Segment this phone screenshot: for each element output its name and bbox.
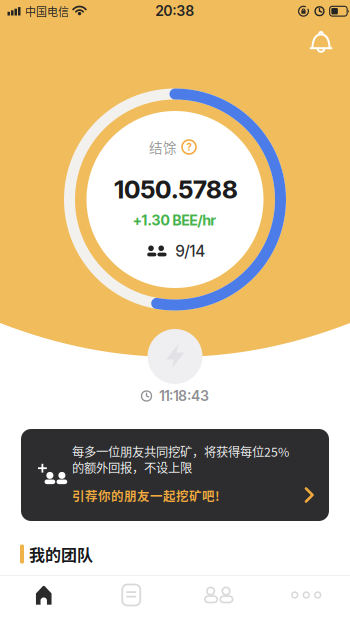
staticText: 每多一位朋友共同挖矿，将获得每位25%	[72, 443, 289, 460]
staticText: 的额外回报，不设上限	[72, 459, 192, 476]
staticText: 我的团队	[29, 542, 93, 566]
staticText: 1050.5788	[114, 174, 238, 205]
button[interactable]: 更多	[262, 572, 350, 618]
staticText: 20:38	[155, 2, 194, 19]
button[interactable]: 帮助	[182, 140, 196, 154]
button[interactable]: 通知	[303, 23, 339, 59]
button[interactable]: 每多一位朋友共同挖矿，将获得每位25%	[21, 429, 329, 521]
button[interactable]: 记录	[87, 572, 175, 618]
staticText: 引荐你的朋友一起挖矿吧!	[72, 486, 220, 505]
staticText: ?	[186, 141, 191, 153]
staticText: 11:18:43	[159, 387, 209, 404]
staticText: 结馀	[149, 137, 177, 157]
staticText: 9/14	[175, 242, 204, 260]
staticText: +1.30 BEE/hr	[132, 212, 215, 229]
staticText: 中国电信	[25, 3, 69, 19]
button[interactable]: 团队	[175, 572, 262, 618]
button[interactable]: 首页	[0, 572, 87, 618]
